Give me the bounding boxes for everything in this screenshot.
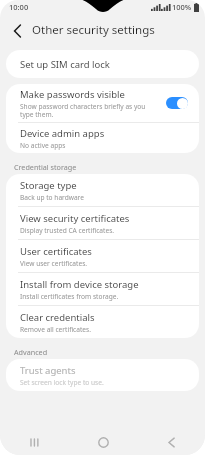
staticText: Advanced (14, 347, 48, 357)
staticText: Other security settings (32, 22, 155, 38)
button[interactable]: Trust agents (6, 359, 199, 391)
staticText: View security certificates (20, 212, 130, 225)
staticText: Back up to hardware (20, 193, 84, 202)
button[interactable]: Make passwords visible toggle (165, 95, 189, 111)
staticText: Credential storage (14, 162, 77, 172)
button[interactable]: View security certificates (6, 207, 199, 239)
staticText: Install certificates from storage. (20, 292, 119, 301)
button[interactable]: Recents (0, 429, 69, 455)
button[interactable]: Back (7, 20, 28, 41)
staticText: Remove all certificates. (20, 325, 91, 334)
staticText: Set screen lock type to use. (20, 378, 104, 387)
button[interactable]: Make passwords visible (6, 84, 199, 122)
staticText: Display trusted CA certificates. (20, 226, 115, 235)
staticText: 100% (172, 2, 192, 12)
button[interactable]: Device admin apps (6, 123, 199, 153)
button[interactable]: User certificates (6, 240, 199, 272)
staticText: Install from device storage (20, 278, 139, 291)
button[interactable]: Home (69, 429, 137, 455)
staticText: No active apps (20, 141, 66, 150)
staticText: Show password characters briefly as you … (20, 102, 159, 119)
button[interactable]: Set up SIM card lock (6, 50, 199, 78)
staticText: 10:00 (9, 2, 29, 12)
staticText: Trust agents (20, 364, 76, 377)
staticText: Set up SIM card lock (20, 58, 110, 71)
button[interactable]: Install from device storage (6, 273, 199, 305)
button[interactable]: Clear credentials (6, 306, 199, 338)
staticText: Clear credentials (20, 311, 95, 324)
staticText: User certificates (20, 245, 92, 258)
staticText: View user certificates. (20, 259, 88, 268)
button[interactable]: Storage type (6, 174, 199, 206)
button[interactable]: Back (137, 429, 205, 455)
staticText: Storage type (20, 179, 77, 192)
staticText: Device admin apps (20, 127, 105, 140)
staticText: Make passwords visible (20, 88, 125, 101)
